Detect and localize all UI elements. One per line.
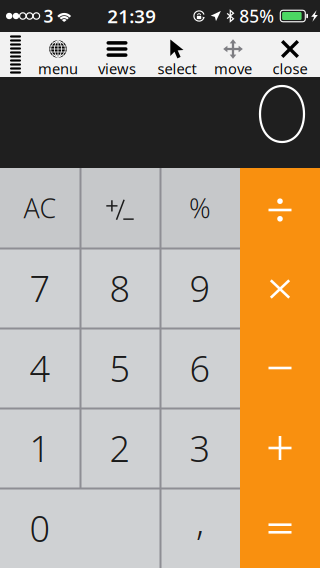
button[interactable]: move: [205, 32, 261, 77]
staticText: close: [272, 59, 307, 78]
staticText: 5: [109, 344, 130, 392]
staticText: 21:39: [107, 4, 156, 28]
button[interactable]: 4: [0, 328, 80, 408]
button[interactable]: 0: [0, 488, 160, 568]
button[interactable]: 7: [0, 248, 80, 328]
staticText: 6: [189, 344, 210, 392]
staticText: menu: [38, 59, 78, 78]
button[interactable]: 1: [0, 408, 80, 488]
button[interactable]: 9: [160, 248, 240, 328]
button[interactable]: %: [160, 168, 240, 248]
button[interactable]: Divide: [240, 168, 320, 248]
staticText: ,: [196, 497, 204, 545]
staticText: %: [189, 190, 211, 226]
button[interactable]: 6: [160, 328, 240, 408]
staticText: 3: [44, 4, 54, 27]
button[interactable]: close: [262, 32, 318, 77]
staticText: 1: [29, 424, 50, 472]
staticText: 4: [29, 344, 50, 392]
staticText: 7: [29, 264, 50, 312]
staticText: 3: [189, 424, 210, 472]
button[interactable]: Multiply: [240, 248, 320, 328]
staticText: views: [98, 59, 136, 78]
button[interactable]: [80, 168, 160, 248]
button[interactable]: views: [89, 32, 145, 77]
staticText: AC: [23, 190, 56, 226]
button[interactable]: Equals: [240, 488, 320, 568]
staticText: 9: [189, 264, 210, 312]
button[interactable]: Subtract: [240, 328, 320, 408]
button[interactable]: Add: [240, 408, 320, 488]
button[interactable]: AC: [0, 168, 80, 248]
staticText: 2: [109, 424, 130, 472]
button[interactable]: Resize: [0, 32, 32, 77]
button[interactable]: ,: [160, 488, 240, 568]
button[interactable]: select: [149, 32, 205, 77]
staticText: 8: [109, 264, 130, 312]
button[interactable]: menu: [30, 32, 86, 77]
staticText: move: [214, 59, 252, 78]
button[interactable]: 5: [80, 328, 160, 408]
staticText: 85%: [239, 4, 274, 27]
button[interactable]: 8: [80, 248, 160, 328]
button[interactable]: 3: [160, 408, 240, 488]
staticText: 0: [29, 504, 50, 552]
button[interactable]: 2: [80, 408, 160, 488]
staticText: select: [157, 59, 196, 78]
